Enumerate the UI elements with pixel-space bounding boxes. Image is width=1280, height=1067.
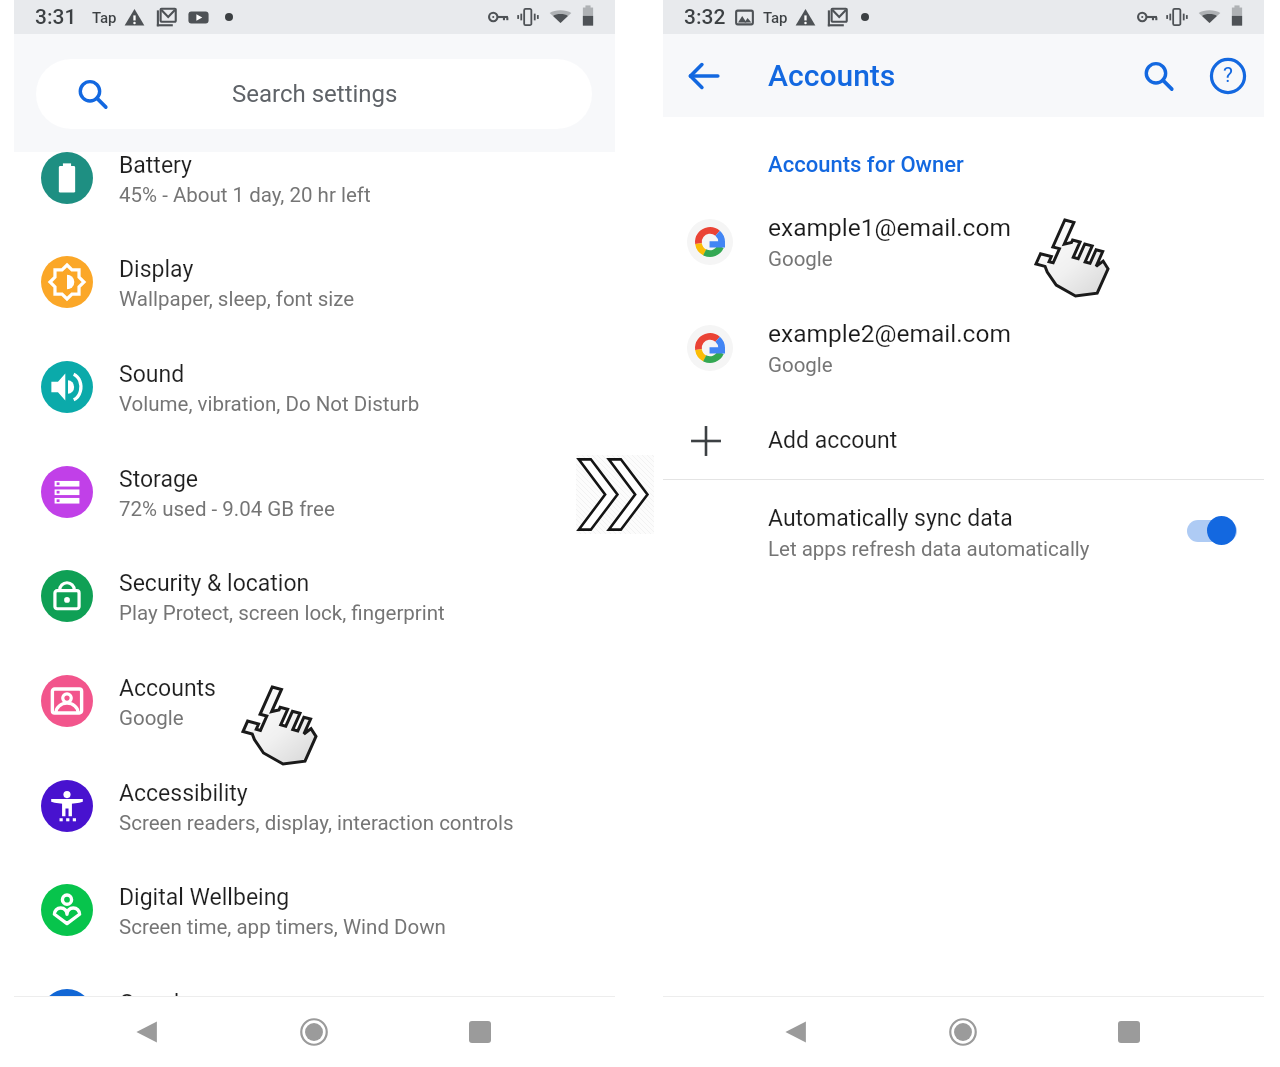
button[interactable]: Recents	[1105, 1008, 1152, 1055]
staticText: Wallpaper, sleep, font size	[119, 287, 355, 311]
staticText: Security & location	[119, 570, 310, 597]
staticText: 72% used - 9.04 GB free	[119, 497, 335, 521]
button[interactable]: Digital Wellbeing	[14, 858, 615, 962]
staticText: Google	[119, 990, 192, 997]
button[interactable]: Back	[680, 52, 728, 100]
staticText: example2@email.com	[768, 319, 1011, 348]
button[interactable]: Security & location	[14, 544, 615, 648]
button[interactable]: Help	[1204, 52, 1252, 100]
staticText: Volume, vibration, Do Not Disturb	[119, 392, 420, 416]
staticText: Search settings	[232, 80, 398, 108]
button[interactable]: Add account	[663, 406, 1264, 476]
button[interactable]: Back	[123, 1008, 170, 1055]
button[interactable]: Home	[290, 1008, 337, 1055]
button[interactable]: Accounts	[14, 649, 615, 753]
button[interactable]: Recents	[456, 1008, 503, 1055]
staticText: Battery	[119, 152, 192, 179]
staticText: Tap	[92, 9, 117, 27]
staticText: Display	[119, 256, 194, 283]
button[interactable]: Sound	[14, 335, 615, 439]
staticText: Sound	[119, 361, 185, 388]
staticText: Google	[768, 247, 833, 271]
staticText: Accounts	[119, 675, 216, 702]
staticText: ?	[1223, 63, 1233, 88]
button[interactable]: Storage	[14, 440, 615, 544]
button[interactable]: example2@email.com	[663, 313, 1264, 383]
button[interactable]: example1@email.com	[663, 207, 1264, 277]
button[interactable]: Battery	[14, 151, 615, 230]
button[interactable]: Automatically sync data	[663, 496, 1264, 576]
staticText: Storage	[119, 466, 199, 493]
staticText: Play Protect, screen lock, fingerprint	[119, 601, 445, 625]
button[interactable]: Home	[939, 1008, 986, 1055]
staticText: Accounts	[768, 58, 896, 93]
button[interactable]: Search	[1134, 52, 1182, 100]
button[interactable]: Search settings	[36, 59, 592, 129]
button[interactable]: Display	[14, 230, 615, 334]
staticText: Screen readers, display, interaction con…	[119, 811, 514, 835]
staticText: 3:31	[35, 5, 77, 30]
staticText: Tap	[763, 9, 788, 27]
staticText: Digital Wellbeing	[119, 884, 290, 911]
staticText: Accessibility	[119, 780, 248, 807]
staticText: example1@email.com	[768, 213, 1011, 242]
staticText: 45% - About 1 day, 20 hr left	[119, 183, 371, 207]
staticText: Google	[119, 706, 184, 730]
button[interactable]: Accessibility	[14, 754, 615, 858]
staticText: Screen time, app timers, Wind Down	[119, 915, 446, 939]
staticText: Let apps refresh data automatically	[768, 537, 1090, 561]
staticText: Automatically sync data	[768, 505, 1013, 532]
staticText: Add account	[768, 427, 898, 454]
button[interactable]: Back	[772, 1008, 819, 1055]
staticText: Accounts for Owner	[768, 152, 964, 178]
staticText: 3:32	[684, 5, 726, 30]
staticText: Google	[768, 353, 833, 377]
